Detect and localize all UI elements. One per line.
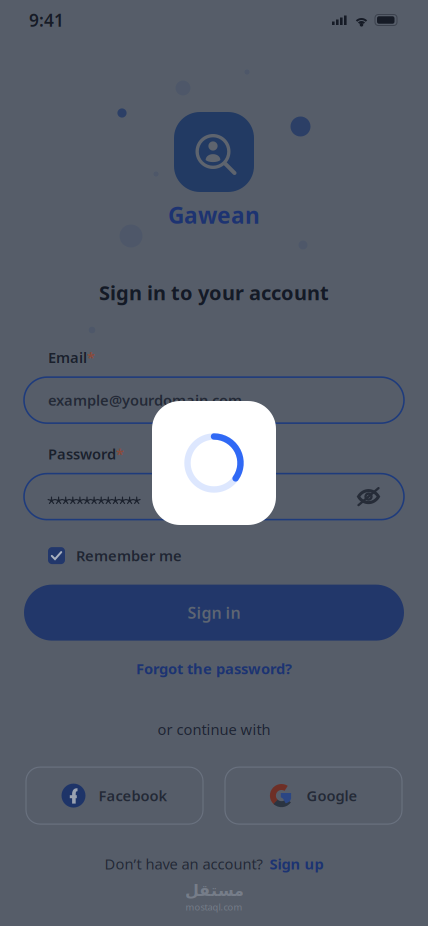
staticText: example@yourdomain.com: [48, 390, 242, 410]
staticText: Forgot the password?: [136, 659, 292, 678]
staticText: Email: [48, 348, 87, 367]
staticText: Sign up: [269, 854, 323, 873]
staticText: or continue with: [157, 720, 270, 739]
button[interactable]: Forgot the password?: [136, 657, 292, 681]
staticText: *: [87, 348, 95, 367]
button[interactable]: Show password: [357, 476, 380, 518]
button[interactable]: Google: [225, 767, 402, 824]
staticText: مستقل: [184, 881, 243, 900]
staticText: Remember me: [76, 546, 182, 565]
staticText: *: [116, 444, 124, 464]
button[interactable]: Remember me: [0, 542, 428, 570]
staticText: Facebook: [98, 786, 167, 805]
staticText: Don’t have an account?: [104, 854, 262, 873]
staticText: Password: [48, 444, 116, 464]
button[interactable]: Sign up: [269, 854, 323, 873]
staticText: Google: [306, 786, 357, 805]
staticText: 9:41: [29, 8, 64, 31]
button[interactable]: Facebook: [26, 767, 203, 824]
button[interactable]: Sign in: [0, 585, 428, 641]
staticText: Sign in: [187, 602, 240, 623]
staticText: mostaql.com: [185, 901, 242, 913]
staticText: Gawean: [168, 200, 260, 230]
staticText: Sign in to your account: [99, 279, 329, 306]
